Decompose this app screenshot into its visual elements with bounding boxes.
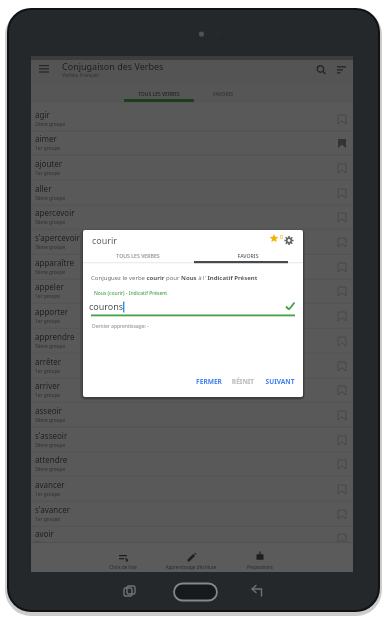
staticText: 1er groupe: [35, 516, 61, 523]
staticText: FERMER: [193, 377, 225, 388]
staticText: Conjuguez le verbe courir pour Nous à l'…: [91, 274, 258, 282]
button[interactable]: RÉINIT: [229, 372, 257, 389]
staticText: arrêter: [35, 356, 62, 367]
staticText: Nous (courir) - Indicatif Présent: [94, 290, 168, 297]
button[interactable]: avancer: [31, 477, 353, 502]
button[interactable]: attendre: [31, 452, 353, 477]
button[interactable]: Choix de liste: [93, 544, 153, 572]
staticText: asseoir: [35, 405, 62, 416]
staticText: aimer: [35, 133, 57, 144]
button[interactable]: [35, 61, 51, 77]
staticText: 1er groupe: [35, 392, 61, 399]
button[interactable]: arriver: [31, 378, 353, 403]
staticText: s'asseoir: [35, 430, 68, 441]
button[interactable]: FAVORIS: [193, 247, 303, 263]
staticText: 1er groupe: [35, 491, 61, 498]
button[interactable]: asseoir: [31, 403, 353, 428]
button[interactable]: [333, 62, 349, 78]
staticText: 3ème groupe: [35, 343, 66, 350]
button[interactable]: s'asseoir: [31, 428, 353, 453]
staticText: attendre: [35, 454, 68, 465]
button[interactable]: ajouter: [31, 156, 353, 181]
staticText: 1er groupe: [35, 293, 61, 300]
staticText: avoir: [35, 528, 54, 539]
staticText: 3ème groupe: [35, 244, 66, 251]
staticText: arriver: [35, 380, 61, 391]
staticText: Conjugaison des Verbes: [62, 60, 164, 72]
button[interactable]: apercevoir: [31, 205, 353, 230]
staticText: courons: [89, 300, 124, 312]
staticText: apprendre: [35, 331, 75, 342]
staticText: apporter: [35, 306, 69, 317]
staticText: TOUS LES VERBES: [83, 252, 193, 260]
staticText: 3ème groupe: [35, 269, 66, 276]
button[interactable]: [282, 233, 296, 247]
staticText: 3ème groupe: [35, 540, 66, 547]
button[interactable]: apporter: [31, 304, 353, 329]
staticText: 3ème groupe: [35, 442, 66, 449]
staticText: 3ème groupe: [35, 219, 66, 226]
staticText: FAVORIS: [193, 252, 303, 260]
staticText: SUIVANT: [263, 377, 297, 388]
staticText: Verbes Français: [62, 72, 99, 79]
staticText: apparaître: [35, 257, 75, 268]
staticText: 2ème groupe: [35, 121, 66, 128]
staticText: aller: [35, 183, 52, 194]
staticText: 3ème groupe: [35, 195, 66, 202]
staticText: s'avancer: [35, 504, 70, 515]
button[interactable]: appeler: [31, 279, 353, 304]
button[interactable]: aimer: [31, 131, 353, 156]
staticText: 1er groupe: [35, 145, 61, 152]
staticText: 0: [280, 234, 283, 241]
button[interactable]: SUIVANT: [263, 372, 297, 389]
staticText: FAVORIS: [192, 91, 254, 99]
button[interactable]: FAVORIS: [192, 83, 254, 103]
staticText: TOUS LES VERBES: [128, 91, 190, 99]
staticText: courir: [92, 234, 118, 246]
staticText: Choix de liste: [94, 564, 152, 571]
button[interactable]: avoir: [31, 526, 353, 551]
button[interactable]: agir: [31, 107, 353, 132]
staticText: s'apercevoir: [35, 232, 80, 243]
button[interactable]: courons: [89, 298, 295, 316]
button[interactable]: arrêter: [31, 354, 353, 379]
staticText: apercevoir: [35, 207, 75, 218]
staticText: 3ème groupe: [35, 417, 66, 424]
staticText: Apprentissage d'écriture: [162, 564, 220, 571]
staticText: RÉINIT: [229, 377, 257, 388]
button[interactable]: FERMER: [193, 372, 225, 389]
button[interactable]: apparaître: [31, 255, 353, 280]
staticText: 1er groupe: [35, 170, 61, 177]
staticText: ajouter: [35, 158, 63, 169]
button[interactable]: TOUS LES VERBES: [128, 83, 190, 103]
staticText: agir: [35, 109, 50, 120]
staticText: avancer: [35, 479, 65, 490]
staticText: 1er groupe: [35, 318, 61, 325]
staticText: Dernier apprentissage: -: [92, 323, 149, 330]
staticText: 1er groupe: [35, 368, 61, 375]
button[interactable]: s'avancer: [31, 502, 353, 527]
staticText: appeler: [35, 281, 64, 292]
staticText: 3ème groupe: [35, 466, 66, 473]
button[interactable]: apprendre: [31, 329, 353, 354]
button[interactable]: Propositions: [230, 544, 290, 572]
button[interactable]: Apprentissage d'écriture: [161, 544, 221, 572]
button[interactable]: s'apercevoir: [31, 230, 353, 255]
button[interactable]: aller: [31, 181, 353, 206]
staticText: Propositions: [231, 564, 289, 571]
button[interactable]: TOUS LES VERBES: [83, 247, 193, 263]
button[interactable]: [314, 63, 330, 79]
button[interactable]: [266, 231, 282, 247]
